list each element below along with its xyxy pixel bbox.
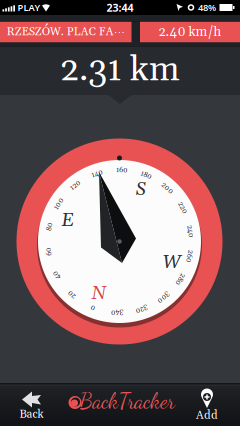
staticText: 60: [44, 247, 53, 256]
staticText: 23:44: [106, 0, 133, 15]
staticText: 48%: [198, 1, 216, 14]
staticText: PLAY: [17, 1, 40, 14]
button[interactable]: 2.40 km/h: [140, 22, 240, 42]
staticText: 300: [156, 293, 170, 302]
staticText: 0: [90, 303, 95, 312]
staticText: 120: [69, 180, 81, 190]
staticText: 2.31 km: [60, 48, 180, 92]
staticText: 100: [52, 199, 65, 208]
staticText: 40: [52, 270, 61, 280]
staticText: 280: [174, 275, 187, 284]
staticText: S: [135, 178, 145, 201]
staticText: 320: [135, 305, 148, 314]
staticText: 260: [183, 252, 196, 261]
staticText: W: [162, 251, 180, 274]
button[interactable]: Add: [185, 387, 229, 421]
staticText: 20: [67, 290, 76, 299]
staticText: RZESZÓW. PLAC FA⋯: [7, 25, 125, 39]
staticText: 2.40 km/h: [158, 23, 221, 40]
button[interactable]: Back: [5, 387, 57, 421]
staticText: 80: [45, 222, 54, 231]
button[interactable]: RZESZÓW. PLAC FA⋯: [0, 22, 131, 42]
staticText: BackTracker: [79, 388, 174, 414]
staticText: 180: [140, 171, 152, 180]
staticText: 240: [184, 227, 197, 236]
staticText: 220: [176, 203, 189, 213]
staticText: Add: [196, 408, 218, 423]
staticText: 160: [116, 165, 128, 175]
staticText: Back: [19, 407, 43, 422]
staticText: 140: [91, 169, 103, 178]
staticText: 200: [160, 184, 174, 193]
staticText: N: [91, 282, 105, 305]
staticText: E: [62, 209, 74, 232]
staticText: 340: [110, 308, 123, 318]
